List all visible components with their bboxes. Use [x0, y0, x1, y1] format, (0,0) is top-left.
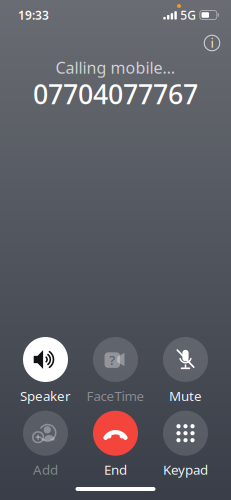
button[interactable]: Keypad — [150, 411, 220, 478]
staticText: FaceTime — [86, 387, 144, 405]
button[interactable]: Speaker — [10, 337, 80, 405]
staticText: 5G — [180, 7, 196, 23]
staticText: Calling mobile… — [55, 57, 175, 78]
staticText: i — [210, 34, 213, 51]
staticText: Add — [33, 461, 58, 478]
button[interactable]: End — [80, 411, 150, 478]
staticText: Speaker — [20, 387, 71, 405]
button[interactable]: Call info — [196, 27, 228, 59]
button[interactable]: Mute — [150, 337, 220, 405]
button[interactable]: Add — [10, 411, 80, 478]
staticText: 19:33 — [18, 7, 49, 23]
staticText: Keypad — [163, 461, 208, 478]
button[interactable]: ? — [80, 337, 150, 405]
staticText: 07704077767 — [33, 76, 198, 112]
staticText: Mute — [169, 387, 202, 405]
staticText: ? — [109, 351, 115, 369]
staticText: End — [104, 461, 127, 478]
